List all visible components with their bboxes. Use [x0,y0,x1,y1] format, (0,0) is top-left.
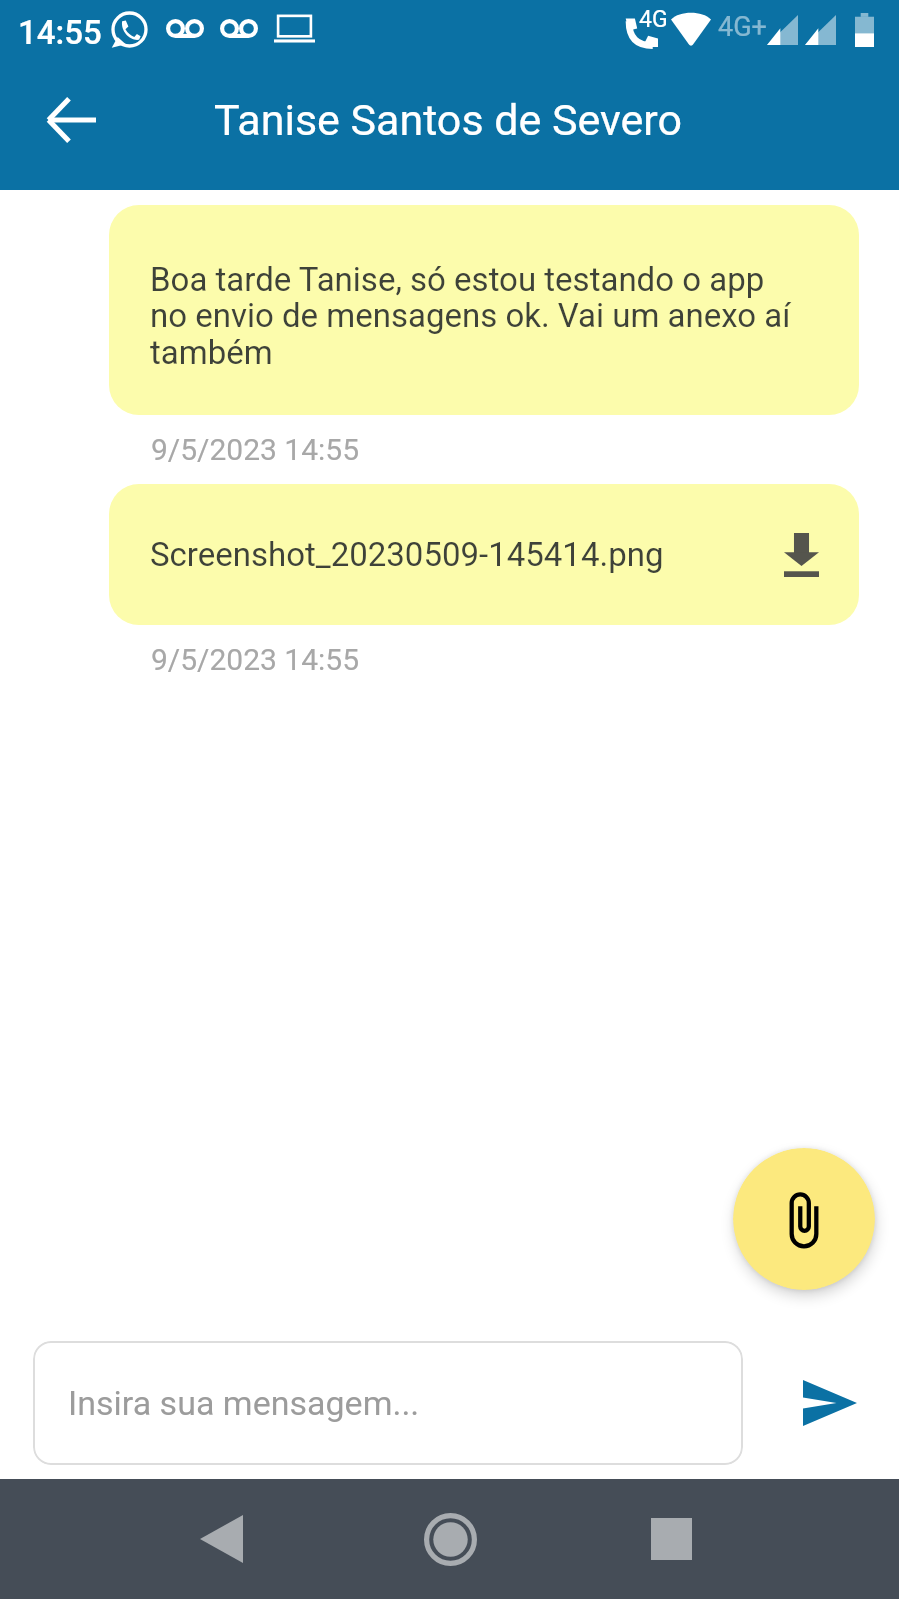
staticText: 9/5/2023 14:55 [151,432,360,467]
button[interactable]: Screenshot_20230509-145414.png [109,484,859,625]
button[interactable]: Enviar [770,1341,890,1465]
staticText: Boa tarde Tanise, só estou testando o ap… [150,260,791,372]
staticText: Screenshot_20230509-145414.png [150,535,784,574]
button[interactable]: Anexar arquivo [733,1148,875,1290]
staticText: 4G+ [718,11,767,43]
staticText: Insira sua mensagem... [68,1383,420,1423]
button[interactable]: Voltar [29,78,113,162]
button[interactable]: Boa tarde Tanise, só estou testando o ap… [109,205,859,415]
staticText: 14:55 [18,13,102,52]
button[interactable]: Insira sua mensagem... [33,1341,743,1465]
staticText: Tanise Santos de Severo [214,95,683,145]
button[interactable]: Recentes [611,1479,731,1599]
staticText: 9/5/2023 14:55 [151,642,360,677]
button[interactable]: Início [390,1479,510,1599]
staticText: 4G [639,6,668,33]
button[interactable]: Voltar [161,1479,281,1599]
